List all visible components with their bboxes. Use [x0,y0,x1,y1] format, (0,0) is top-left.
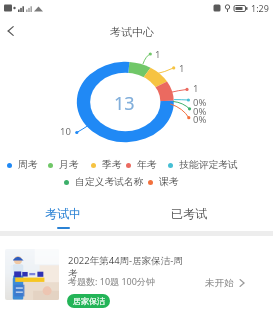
staticText: 0% [193,105,207,118]
staticText: 未开始 [205,277,234,289]
button[interactable]: 自定义考试名称 [64,176,144,188]
button[interactable]: 月考 [48,159,79,171]
staticText: 0% [193,96,207,109]
staticText: 技能评定考试 [179,159,238,171]
button[interactable]: 课考 [148,176,179,188]
staticText: 1 [193,82,199,95]
button[interactable]: 已考试 [155,206,223,232]
staticText: 13 [114,91,135,116]
staticText: 季考 [102,159,122,171]
staticText: 周考 [18,159,38,171]
staticText: 10 [60,125,71,138]
staticText: 0% [193,113,207,126]
button[interactable]: 周考 [7,159,38,171]
staticText: 1 [179,62,185,75]
staticText: 2022年第44周-居家保洁-周考 [68,254,189,279]
staticText: 考试中心 [110,25,154,39]
staticText: 年考 [137,159,157,171]
staticText: 自定义考试名称 [75,176,144,188]
button[interactable]: 2022年第44周-居家保洁-周考 [0,0,273,315]
button[interactable]: Back [0,20,22,42]
staticText: 考题数: 10题 100分钟 [68,275,155,287]
button[interactable]: 技能评定考试 [168,159,238,171]
staticText: 1 [155,48,161,61]
staticText: 1:29 [251,2,269,14]
staticText: 已考试 [171,206,207,221]
button[interactable]: 年考 [126,159,157,171]
staticText: 课考 [159,176,179,188]
staticText: 月考 [59,159,79,171]
staticText: 居家保洁 [73,296,105,306]
staticText: 考试中 [45,206,81,221]
button[interactable]: 季考 [91,159,122,171]
button[interactable]: 考试中 [29,206,97,232]
